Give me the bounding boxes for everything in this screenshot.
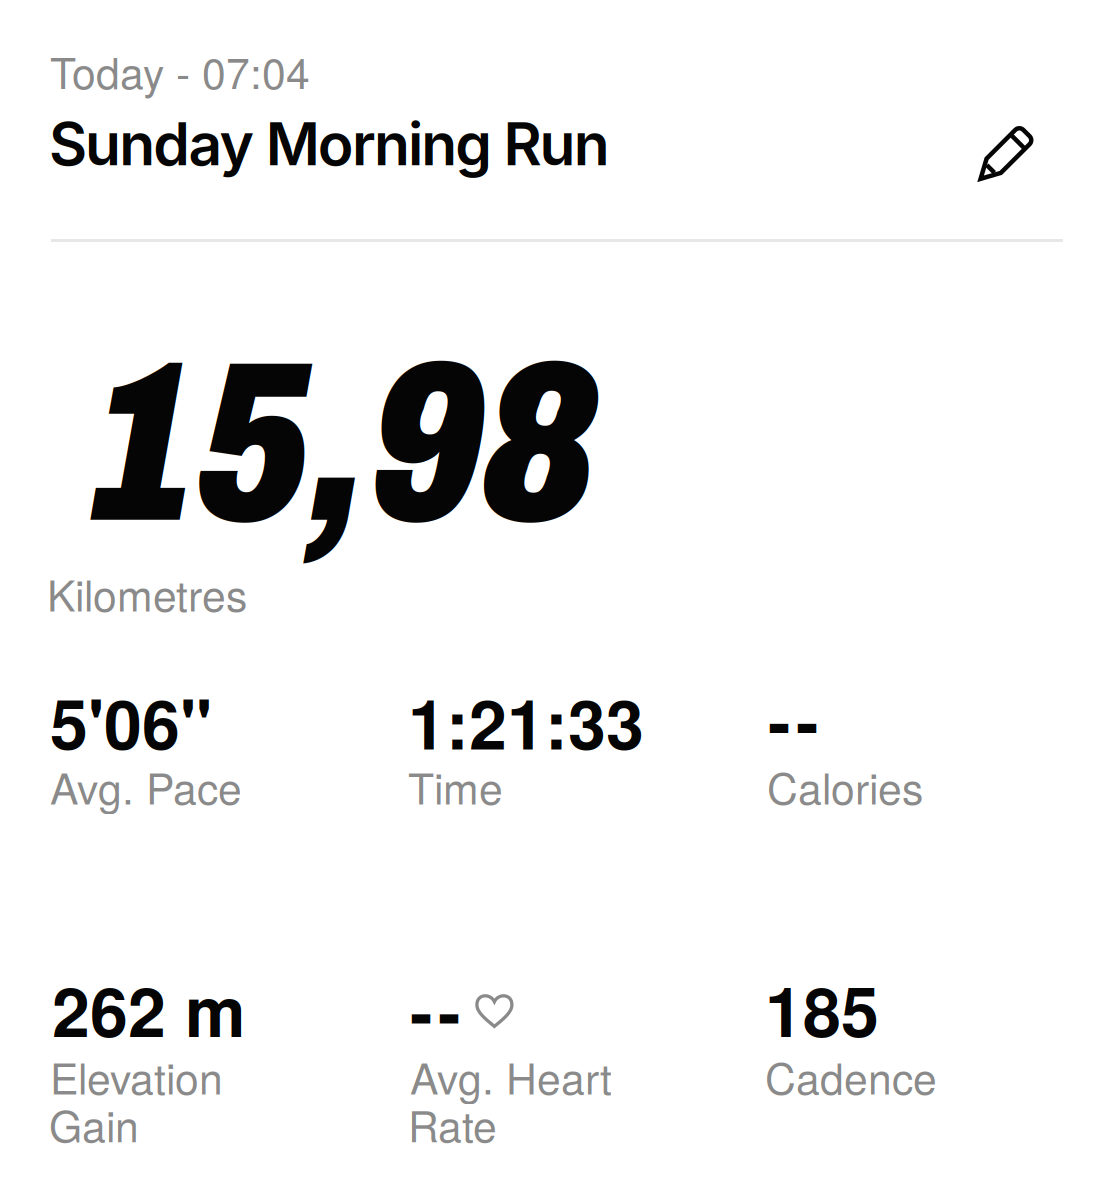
staticText: 5'06'' [50,673,212,770]
staticText: Avg. Heart [410,1045,612,1107]
staticText: Cadence [765,1045,937,1107]
staticText: Sunday Morning Run [49,108,610,179]
button[interactable]: Edit run name [943,92,1068,217]
staticText: Avg. Pace [50,755,242,817]
staticText: Elevation [50,1045,223,1107]
staticText: -- [410,961,461,1058]
staticText: Today - 07:04 [50,40,310,101]
staticText: -- [768,670,819,768]
staticText: 185 [765,960,879,1058]
staticText: 262 m [52,960,245,1058]
staticText: Kilometres [47,562,247,624]
staticText: Gain [49,1093,139,1154]
staticText: 15,98 [93,320,596,568]
staticText: Calories [767,755,923,817]
staticText: Time [408,755,503,817]
staticText: 1:21:33 [408,673,644,770]
staticText: Rate [408,1093,497,1154]
